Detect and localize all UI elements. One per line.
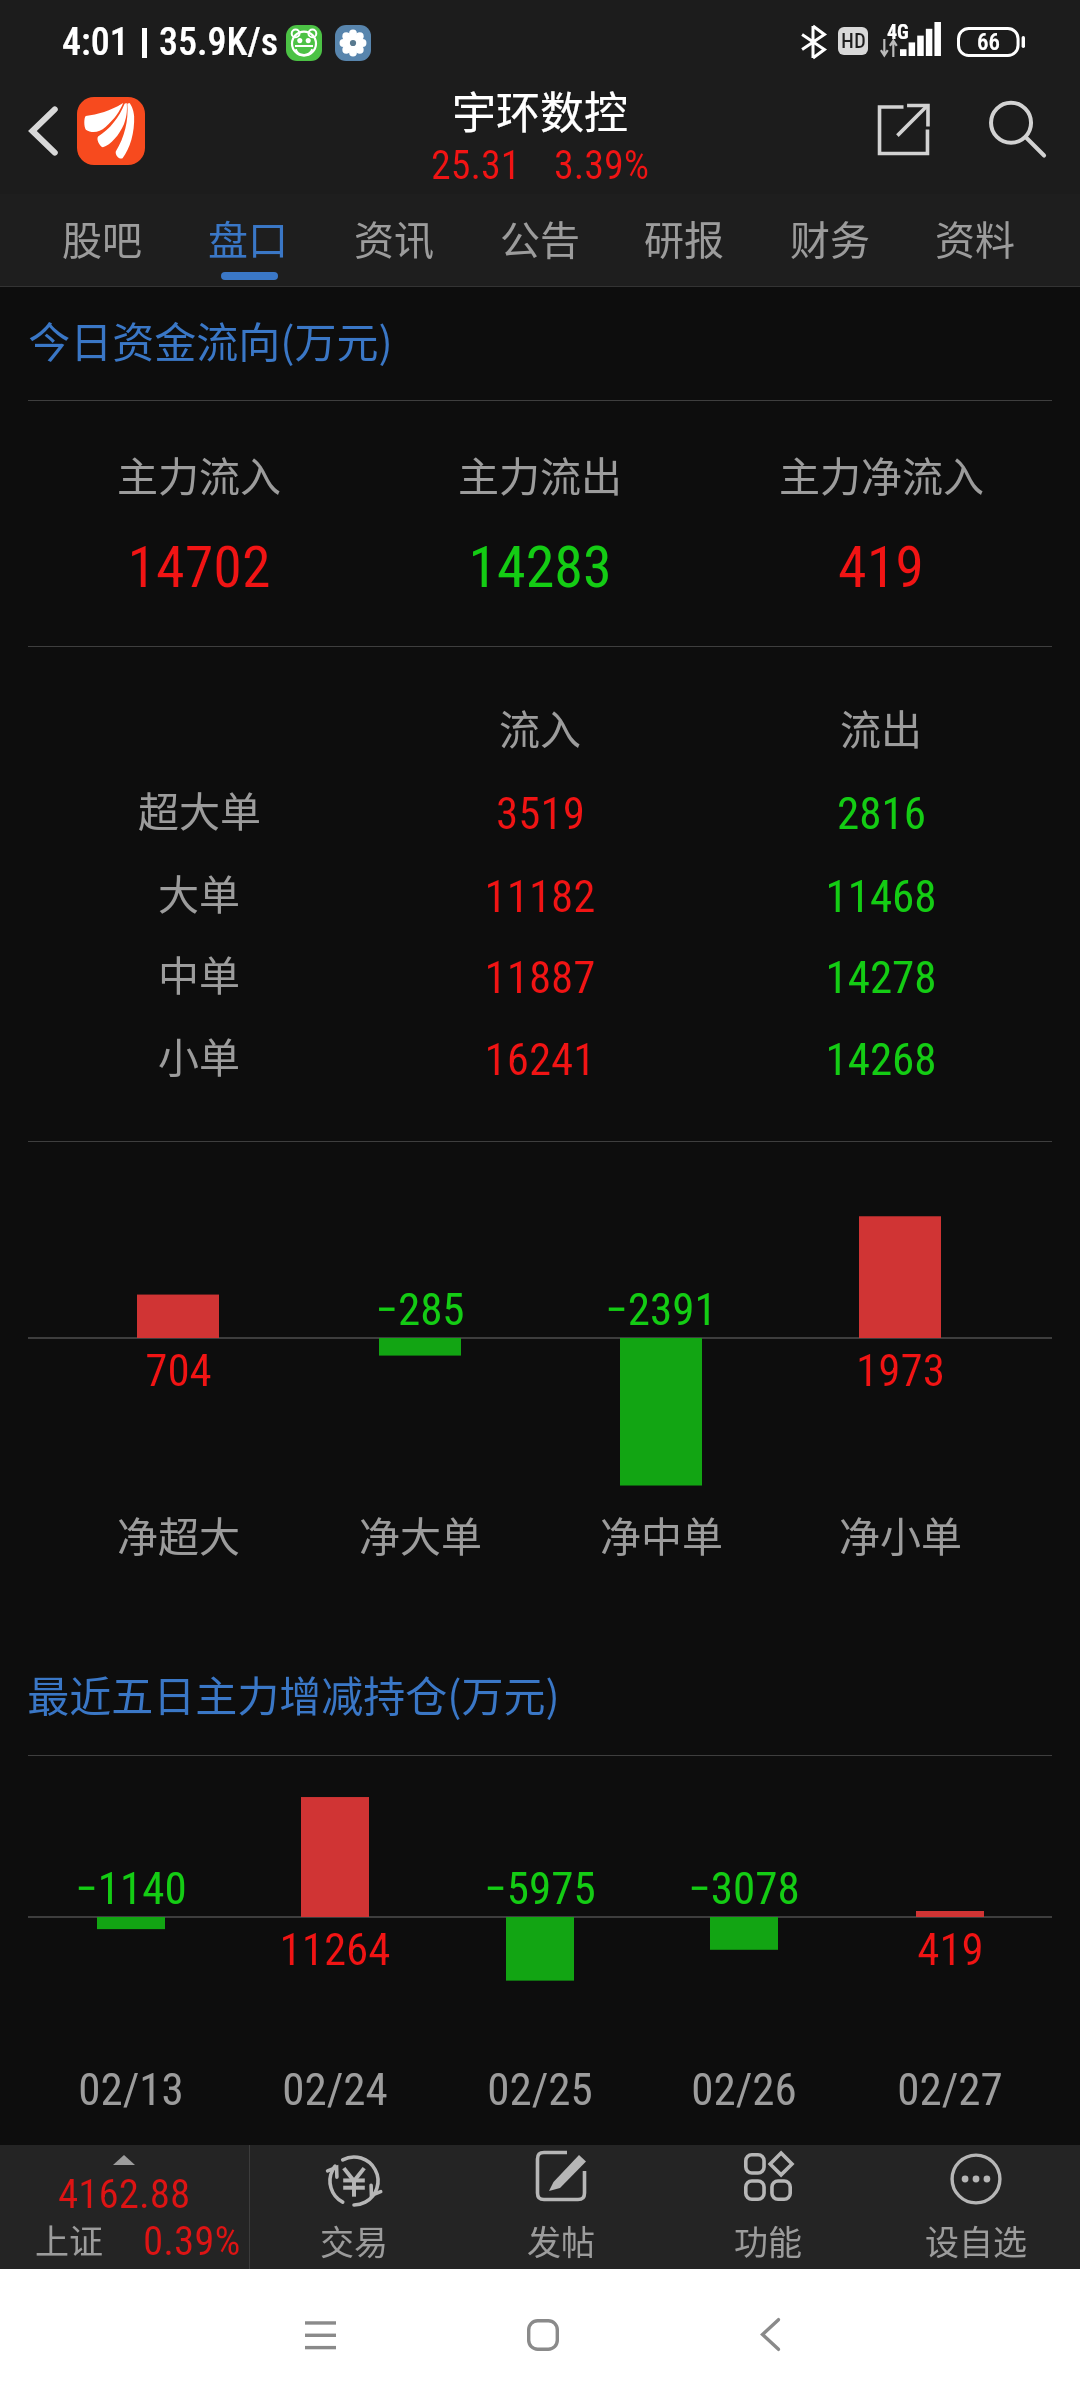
staticText: 盘口 <box>208 209 288 267</box>
button[interactable]: 交易 <box>250 2145 457 2269</box>
staticText: 公告 <box>500 209 580 267</box>
button[interactable]: 研报 <box>612 194 756 287</box>
staticText: −3078 <box>688 1862 800 1915</box>
staticText: 11468 <box>825 870 937 923</box>
staticText: 发帖 <box>527 2216 595 2265</box>
staticText: 16241 <box>484 1033 596 1086</box>
staticText: 66 <box>977 29 1000 56</box>
staticText: 净超大 <box>117 1504 240 1563</box>
button[interactable]: 财务 <box>758 194 902 287</box>
staticText: 流出 <box>840 697 922 756</box>
staticText: 宇环数控 <box>452 78 628 142</box>
staticText: 02/13 <box>78 2063 184 2116</box>
staticText: 超大单 <box>138 779 261 838</box>
button[interactable]: 功能 <box>664 2145 872 2269</box>
staticText: 2816 <box>837 787 926 840</box>
button[interactable]: 公告 <box>468 194 612 287</box>
staticText: 上证 <box>35 2215 103 2264</box>
button[interactable]: 发帖 <box>457 2145 664 2269</box>
staticText: 4162.88 <box>58 2170 191 2218</box>
staticText: 资料 <box>935 209 1015 267</box>
staticText: 小单 <box>158 1025 240 1084</box>
staticText: 25.31 <box>431 142 521 189</box>
staticText: 35.9K/s <box>159 20 279 65</box>
button[interactable]: Search <box>973 85 1063 175</box>
button[interactable]: Eastmoney home <box>77 97 145 165</box>
button[interactable]: Home <box>513 2269 573 2400</box>
staticText: 股吧 <box>62 209 142 267</box>
staticText: 14283 <box>468 533 612 601</box>
staticText: −5975 <box>484 1862 596 1915</box>
button[interactable]: Back <box>8 86 78 176</box>
button[interactable]: 资料 <box>903 194 1047 287</box>
staticText: 中单 <box>158 943 240 1002</box>
button[interactable]: 设自选 <box>872 2145 1080 2269</box>
staticText: −2391 <box>605 1283 717 1336</box>
staticText: 功能 <box>734 2216 802 2265</box>
staticText: 大单 <box>158 862 240 921</box>
staticText: 流入 <box>499 697 581 756</box>
staticText: 资讯 <box>354 209 434 267</box>
button[interactable]: 资讯 <box>322 194 466 287</box>
staticText: 4:01 <box>62 20 129 65</box>
staticText: 02/25 <box>487 2063 593 2116</box>
staticText: 设自选 <box>925 2216 1027 2265</box>
button[interactable]: Back <box>740 2269 800 2400</box>
staticText: 今日资金流向(万元) <box>28 309 393 370</box>
staticText: −285 <box>375 1283 465 1336</box>
staticText: 704 <box>145 1344 212 1397</box>
staticText: 主力流出 <box>458 444 622 503</box>
staticText: 11182 <box>484 870 596 923</box>
staticText: 4G <box>887 20 909 43</box>
staticText: 419 <box>917 1923 984 1976</box>
button[interactable]: Share <box>858 84 948 174</box>
staticText: 02/26 <box>691 2063 797 2116</box>
staticText: 11264 <box>279 1923 391 1976</box>
button[interactable]: 股吧 <box>30 194 174 287</box>
staticText: HD <box>841 29 866 54</box>
staticText: 净小单 <box>839 1504 962 1563</box>
staticText: 14278 <box>825 951 937 1004</box>
button[interactable]: 盘口 <box>176 194 320 287</box>
staticText: −1140 <box>75 1862 187 1915</box>
staticText: 交易 <box>320 2216 388 2265</box>
staticText: 14268 <box>825 1033 937 1086</box>
staticText: 主力净流入 <box>779 444 984 503</box>
button[interactable]: Shanghai Composite index <box>0 2145 249 2269</box>
staticText: 419 <box>838 533 924 601</box>
staticText: 研报 <box>644 209 724 267</box>
staticText: 02/24 <box>282 2063 388 2116</box>
staticText: 净大单 <box>359 1504 482 1563</box>
staticText: 11887 <box>484 951 596 1004</box>
staticText: 最近五日主力增减持仓(万元) <box>27 1663 560 1724</box>
staticText: 主力流入 <box>117 444 281 503</box>
staticText: 3519 <box>496 787 585 840</box>
staticText: 1973 <box>856 1344 945 1397</box>
staticText: 净中单 <box>600 1504 723 1563</box>
button[interactable]: Recent apps <box>290 2269 350 2400</box>
staticText: 3.39% <box>554 142 650 189</box>
staticText: 14702 <box>127 533 271 601</box>
staticText: 财务 <box>790 209 870 267</box>
staticText: 02/27 <box>897 2063 1003 2116</box>
staticText: 0.39% <box>143 2217 241 2265</box>
